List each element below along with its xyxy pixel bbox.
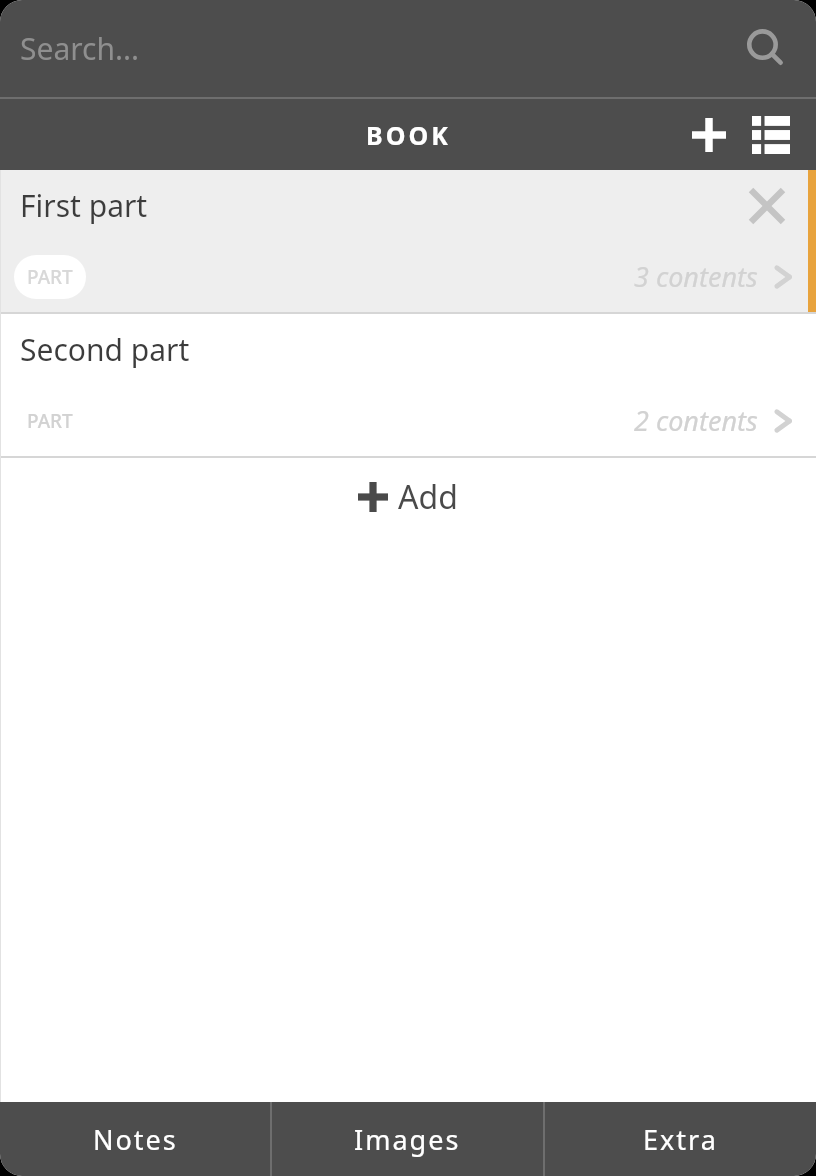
- button[interactable]: First part: [0, 170, 816, 312]
- staticText: Images: [354, 1121, 461, 1158]
- staticText: Extra: [643, 1121, 718, 1158]
- staticText: 3 contents: [634, 258, 758, 295]
- button[interactable]: Notes: [0, 1102, 270, 1176]
- button[interactable]: List view: [740, 104, 802, 166]
- button[interactable]: Extra: [545, 1102, 816, 1176]
- staticText: PART: [27, 408, 73, 434]
- button[interactable]: Close: [740, 179, 794, 233]
- button[interactable]: Search...: [0, 0, 816, 97]
- button[interactable]: Add: [678, 104, 740, 166]
- staticText: First part: [20, 185, 148, 226]
- button[interactable]: Second part: [0, 314, 816, 456]
- staticText: Search...: [20, 28, 140, 69]
- staticText: Notes: [93, 1121, 178, 1158]
- staticText: Second part: [20, 329, 190, 370]
- staticText: BOOK: [366, 118, 451, 152]
- button[interactable]: Images: [272, 1102, 543, 1176]
- button[interactable]: Add: [0, 458, 816, 536]
- staticText: 2 contents: [634, 402, 758, 439]
- staticText: Add: [398, 475, 458, 519]
- button[interactable]: Search: [738, 21, 794, 77]
- staticText: PART: [27, 264, 73, 290]
